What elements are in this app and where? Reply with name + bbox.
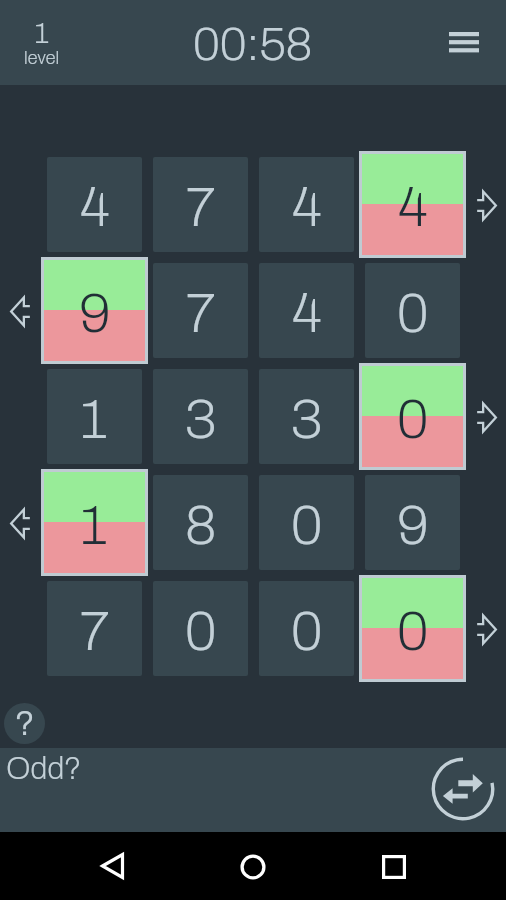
button[interactable]: Shift row right: [466, 185, 506, 225]
staticText: ?: [15, 704, 35, 742]
staticText: 4: [80, 178, 110, 238]
button[interactable]: 1: [44, 472, 145, 573]
button[interactable]: 0: [259, 581, 354, 676]
staticText: 7: [80, 602, 110, 662]
button[interactable]: 0: [365, 263, 460, 358]
button[interactable]: Back: [82, 836, 142, 896]
button[interactable]: Shift row left: [0, 503, 40, 543]
staticText: 0: [397, 390, 429, 450]
staticText: 4: [398, 178, 428, 238]
staticText: 0: [291, 602, 323, 662]
staticText: 4: [292, 284, 322, 344]
button[interactable]: 7: [153, 157, 248, 252]
button[interactable]: Recents: [365, 836, 425, 896]
staticText: 0: [397, 602, 429, 662]
staticText: 0: [397, 284, 429, 344]
staticText: 3: [185, 390, 217, 450]
button[interactable]: 4: [47, 157, 142, 252]
button[interactable]: 3: [153, 369, 248, 464]
button[interactable]: 4: [259, 157, 354, 252]
staticText: 7: [186, 284, 216, 344]
staticText: 1: [81, 390, 108, 450]
button[interactable]: Shift row right: [466, 609, 506, 649]
button[interactable]: 0: [362, 578, 463, 679]
button[interactable]: 7: [153, 263, 248, 358]
button[interactable]: Menu: [440, 19, 488, 67]
button[interactable]: 9: [44, 260, 145, 361]
button[interactable]: 4: [362, 154, 463, 255]
staticText: 7: [186, 178, 216, 238]
button[interactable]: Swap: [429, 755, 497, 823]
staticText: 0: [291, 496, 323, 556]
staticText: 9: [79, 284, 111, 344]
button[interactable]: Home: [223, 836, 283, 896]
button[interactable]: 8: [153, 475, 248, 570]
button[interactable]: 0: [362, 366, 463, 467]
button[interactable]: Help: [4, 703, 45, 744]
button[interactable]: 4: [259, 263, 354, 358]
button[interactable]: Shift row right: [466, 397, 506, 437]
button[interactable]: 7: [47, 581, 142, 676]
staticText: Odd?: [6, 752, 82, 786]
button[interactable]: 0: [259, 475, 354, 570]
button[interactable]: 1: [47, 369, 142, 464]
button[interactable]: 0: [153, 581, 248, 676]
staticText: 0: [185, 602, 217, 662]
staticText: 3: [291, 390, 323, 450]
staticText: 4: [292, 178, 322, 238]
staticText: 9: [397, 496, 429, 556]
button[interactable]: 3: [259, 369, 354, 464]
button[interactable]: Shift row left: [0, 291, 40, 331]
staticText: 00:58: [193, 19, 313, 70]
staticText: 8: [185, 496, 217, 556]
button[interactable]: 1: [7, 9, 77, 75]
staticText: level: [24, 48, 60, 68]
staticText: 1: [35, 18, 49, 50]
staticText: 1: [81, 496, 108, 556]
button[interactable]: 9: [365, 475, 460, 570]
